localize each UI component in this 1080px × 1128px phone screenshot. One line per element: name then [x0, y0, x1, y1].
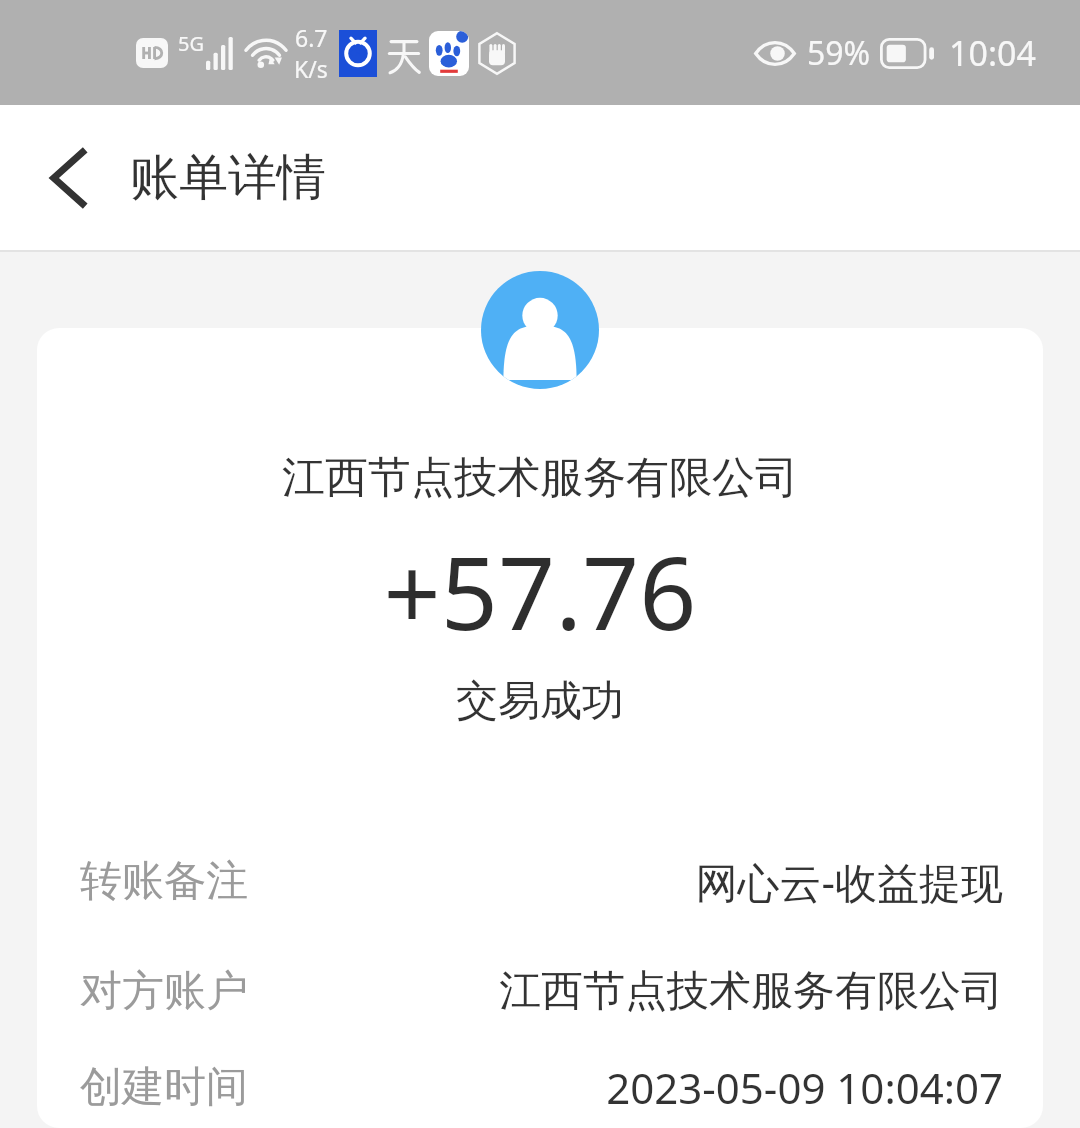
staticText: +57.76	[37, 523, 1043, 659]
staticText: 59%	[807, 31, 871, 75]
staticText: 江西节点技术服务有限公司	[499, 965, 1003, 1018]
staticText: 创建时间	[80, 1061, 248, 1114]
staticText: K/s	[294, 53, 328, 84]
staticText: 交易成功	[37, 675, 1043, 728]
button[interactable]: 对方账户	[37, 936, 1043, 1046]
button[interactable]: Back	[22, 131, 116, 225]
staticText: 账单详情	[130, 147, 326, 209]
button[interactable]: 转账备注	[37, 826, 1043, 936]
button[interactable]: 创建时间	[37, 1046, 1043, 1128]
staticText: 江西节点技术服务有限公司	[37, 451, 1043, 505]
staticText: 10:04	[949, 30, 1036, 76]
staticText: 网心云-收益提现	[695, 853, 1003, 910]
staticText: 转账备注	[80, 855, 248, 908]
staticText: 对方账户	[80, 965, 248, 1018]
staticText: 2023-05-09 10:04:07	[606, 1059, 1003, 1116]
staticText: 6.7	[295, 22, 328, 53]
staticText: 5G	[178, 30, 204, 57]
